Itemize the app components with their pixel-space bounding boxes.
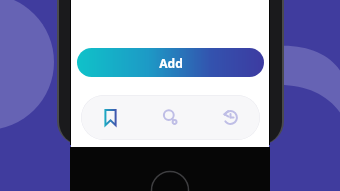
button[interactable]: Add: [77, 48, 264, 77]
button[interactable]: Search: [140, 95, 200, 140]
staticText: Add: [159, 55, 183, 71]
button[interactable]: Bookmarks: [81, 95, 140, 140]
button[interactable]: History: [200, 95, 260, 140]
